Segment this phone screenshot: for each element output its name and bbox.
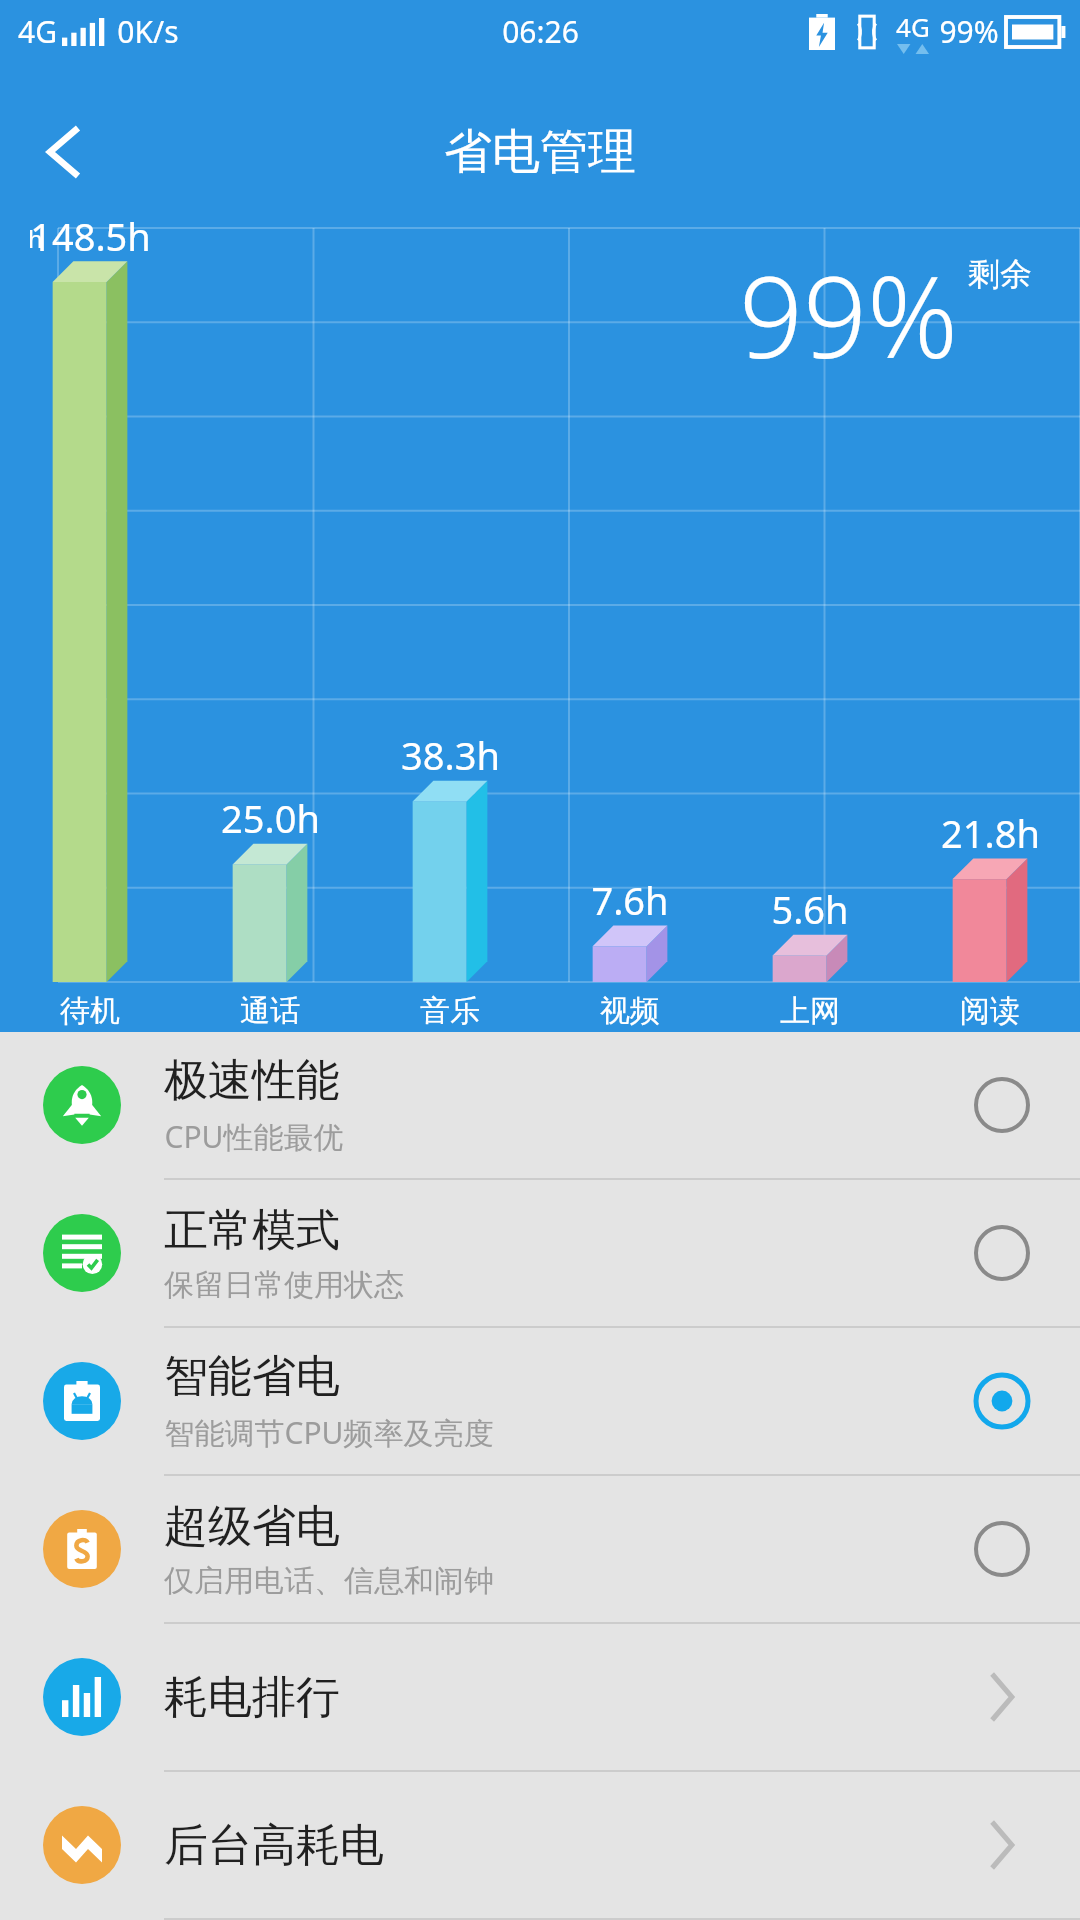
staticText: 4G [896,9,930,44]
staticText: 5.6h [771,883,849,935]
button[interactable]: 超级省电 [0,1476,1080,1622]
staticText: 智能调节CPU频率及亮度 [164,1412,494,1453]
staticText: 耗电排行 [164,1670,340,1725]
staticText: 0K/s [117,11,179,52]
staticText: 极速性能 [164,1053,340,1108]
staticText: h [28,222,43,255]
staticText: 待机 [60,992,120,1030]
staticText: 视频 [600,992,660,1030]
staticText: 38.3h [401,729,500,781]
staticText: 21.8h [941,807,1040,859]
button[interactable]: Back [34,122,94,182]
staticText: 后台高耗电 [164,1818,384,1873]
staticText: 上网 [780,992,840,1030]
staticText: 阅读 [960,992,1020,1030]
staticText: 超级省电 [164,1499,340,1554]
staticText: 省电管理 [444,122,636,182]
staticText: 通话 [240,992,300,1030]
staticText: 7.6h [591,874,669,926]
button[interactable]: 正常模式 [0,1180,1080,1326]
staticText: 剩余 [968,254,1032,294]
staticText: 99% [739,238,958,391]
staticText: CPU性能最优 [164,1116,344,1157]
staticText: 音乐 [420,992,480,1030]
button[interactable]: 后台高耗电 [0,1772,1080,1918]
staticText: 智能省电 [164,1349,340,1404]
staticText: 正常模式 [164,1203,340,1258]
staticText: 仅启用电话、信息和闹钟 [164,1562,494,1600]
staticText: 06:26 [502,11,579,52]
staticText: 4G [18,11,57,52]
staticText: 25.0h [221,792,320,844]
button[interactable]: 耗电排行 [0,1624,1080,1770]
button[interactable]: 极速性能 [0,1032,1080,1178]
staticText: 99% [939,11,999,52]
staticText: 保留日常使用状态 [164,1266,404,1304]
staticText: 148.5h [30,210,151,262]
button[interactable]: 智能省电 [0,1328,1080,1474]
